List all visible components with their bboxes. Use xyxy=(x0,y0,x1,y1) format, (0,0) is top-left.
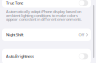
staticText: appear consistent in different environme… xyxy=(6,17,82,22)
button[interactable]: Auto-Brightness xyxy=(2,49,91,63)
staticText: True Tone xyxy=(6,0,23,6)
button[interactable]: Night Shift xyxy=(2,28,91,41)
staticText: Night Shift xyxy=(6,32,23,37)
staticText: Off xyxy=(78,32,84,37)
button[interactable]: True Tone xyxy=(2,0,91,7)
staticText: Auto-Brightness xyxy=(6,54,34,59)
staticText: Automatically adapt iPhone display based… xyxy=(6,9,81,14)
staticText: ambient lighting conditions to make colo… xyxy=(6,13,78,18)
